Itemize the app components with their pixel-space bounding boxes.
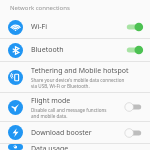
button[interactable]: Download booster (0, 122, 150, 143)
button[interactable]: Wi-Fi (0, 16, 150, 38)
other: Bluetooth (8, 43, 23, 58)
button[interactable]: Flight mode (0, 93, 150, 121)
other: Tethering and Mobile hotspot (8, 70, 23, 85)
staticText: Bluetooth (31, 45, 64, 55)
staticText: Flight mode (31, 96, 71, 106)
staticText: Data usage (31, 144, 69, 150)
staticText: Network connections (10, 4, 70, 12)
button[interactable]: Tethering and Mobile hotspot (0, 62, 150, 92)
button[interactable]: Switch on (124, 44, 144, 56)
staticText: Download booster (31, 128, 92, 138)
button[interactable]: Bluetooth (0, 39, 150, 61)
button[interactable]: Switch off (124, 101, 144, 113)
staticText: Share your device's mobile data connecti… (31, 77, 125, 89)
staticText: Tethering and Mobile hotspot (31, 66, 129, 76)
staticText: Wi-Fi (31, 22, 48, 32)
other: Flight mode (8, 100, 23, 115)
other: Data usage (8, 144, 23, 150)
button[interactable]: Switch on (124, 21, 144, 33)
other: Download booster (8, 125, 23, 140)
staticText: Disable call and message functions and m… (31, 107, 107, 119)
button[interactable]: Data usage (0, 144, 150, 150)
other: Wi-Fi (8, 20, 23, 35)
button[interactable]: Switch off (124, 127, 144, 139)
